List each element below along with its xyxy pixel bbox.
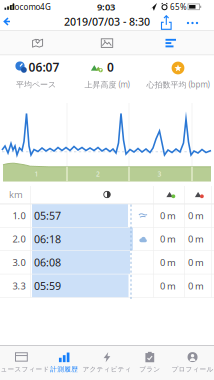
staticText: 06:07	[28, 59, 59, 75]
staticText: 05:57	[34, 208, 61, 223]
staticText: 0 m	[160, 280, 176, 292]
staticText: 9:03	[97, 1, 115, 13]
button[interactable]: More	[186, 20, 199, 25]
staticText: 2	[96, 169, 100, 178]
button[interactable]: Map	[32, 37, 44, 48]
staticText: 2019/07/03 - 8:30	[64, 14, 150, 29]
staticText: 3	[157, 169, 161, 178]
staticText: km	[9, 188, 23, 201]
button[interactable]: アクティビティ	[86, 346, 128, 379]
staticText: プラン	[139, 365, 160, 373]
staticText: 心拍数平均 (bpm)	[146, 79, 209, 90]
button[interactable]: Back	[3, 11, 21, 32]
staticText: 2.0	[12, 233, 25, 245]
staticText: 0 m	[160, 256, 176, 269]
staticText: 平均ペース	[16, 80, 56, 89]
staticText: アクティビティ	[82, 365, 131, 373]
staticText: 1.0	[12, 209, 25, 222]
button[interactable]: Photos	[101, 38, 113, 48]
staticText: プロフィール	[172, 365, 214, 373]
staticText: 06:08	[34, 255, 61, 269]
staticText: 65%	[170, 2, 187, 12]
button[interactable]: Charts	[165, 38, 176, 48]
staticText: 0 m	[188, 256, 204, 269]
staticText: 0 m	[188, 233, 204, 245]
staticText: 05:59	[34, 279, 61, 293]
staticText: 1	[34, 169, 38, 178]
staticText: 0	[107, 59, 114, 75]
button[interactable]: プロフィール	[171, 346, 214, 379]
button[interactable]: ニュースフィード	[0, 346, 43, 379]
staticText: 0 m	[160, 209, 176, 222]
staticText: 0 m	[188, 280, 204, 292]
staticText: 4G	[40, 2, 51, 12]
staticText: ニュースフィード	[0, 365, 49, 373]
staticText: 3.0	[12, 256, 25, 269]
button[interactable]: Share	[160, 14, 172, 30]
button[interactable]: 計測履歴	[43, 346, 86, 379]
staticText: 計測履歴	[50, 365, 78, 373]
staticText: 0 m	[160, 233, 176, 245]
button[interactable]: プラン	[128, 346, 171, 379]
staticText: 上昇高度 (m)	[84, 79, 129, 90]
staticText: 06:18	[34, 232, 61, 246]
staticText: 0 m	[188, 209, 204, 222]
staticText: docomo	[9, 2, 40, 12]
staticText: 3.3	[12, 280, 25, 292]
